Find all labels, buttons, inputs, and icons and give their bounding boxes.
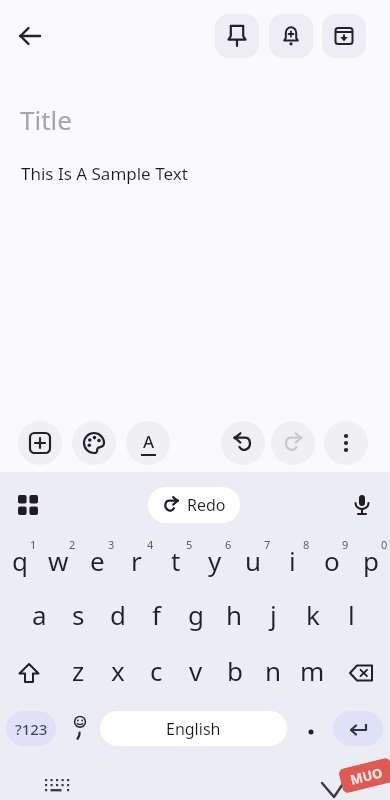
staticText: m bbox=[300, 653, 325, 688]
staticText: 6 bbox=[225, 537, 232, 552]
button[interactable]: z bbox=[58, 647, 98, 693]
button[interactable] bbox=[8, 651, 50, 697]
staticText: u bbox=[245, 543, 262, 578]
button[interactable]: v bbox=[176, 647, 215, 693]
staticText: a bbox=[32, 597, 47, 632]
button[interactable] bbox=[296, 711, 326, 746]
staticText: 8 bbox=[303, 537, 310, 552]
staticText: 3 bbox=[108, 537, 115, 552]
button[interactable] bbox=[221, 421, 265, 465]
staticText: x bbox=[111, 653, 125, 688]
button[interactable] bbox=[271, 421, 315, 465]
staticText: l bbox=[348, 597, 355, 632]
staticText: This Is A Sample Text bbox=[21, 162, 188, 185]
button[interactable]: g bbox=[176, 591, 215, 637]
staticText: ?123 bbox=[15, 719, 48, 739]
button[interactable] bbox=[40, 776, 74, 796]
staticText: 1 bbox=[30, 537, 37, 552]
button[interactable] bbox=[72, 421, 116, 465]
button[interactable]: k bbox=[293, 591, 332, 637]
staticText: 5 bbox=[186, 537, 193, 552]
button[interactable] bbox=[322, 14, 366, 58]
button[interactable] bbox=[8, 14, 52, 58]
button[interactable]: q bbox=[0, 537, 39, 583]
button[interactable]: p bbox=[351, 537, 390, 583]
staticText: v bbox=[189, 653, 203, 688]
button[interactable]: ?123 bbox=[6, 711, 56, 746]
button[interactable] bbox=[215, 14, 259, 58]
staticText: o bbox=[324, 543, 340, 578]
button[interactable] bbox=[348, 491, 376, 519]
button[interactable]: x bbox=[98, 647, 137, 693]
staticText: c bbox=[150, 653, 163, 688]
button[interactable] bbox=[62, 711, 96, 746]
staticText: English bbox=[166, 718, 221, 740]
staticText: q bbox=[12, 543, 28, 578]
staticText: i bbox=[289, 543, 296, 578]
staticText: 7 bbox=[264, 537, 271, 552]
button[interactable] bbox=[18, 421, 62, 465]
button[interactable]: u bbox=[234, 537, 273, 583]
staticText: d bbox=[110, 597, 126, 632]
button[interactable]: m bbox=[293, 647, 332, 693]
button[interactable]: j bbox=[254, 591, 293, 637]
staticText: y bbox=[208, 543, 222, 578]
staticText: e bbox=[90, 543, 105, 578]
staticText: r bbox=[131, 543, 142, 578]
button[interactable]: c bbox=[137, 647, 176, 693]
staticText: Redo bbox=[187, 494, 226, 516]
button[interactable]: n bbox=[254, 647, 293, 693]
staticText: k bbox=[306, 597, 320, 632]
staticText: p bbox=[363, 543, 379, 578]
staticText: n bbox=[265, 653, 282, 688]
button[interactable]: f bbox=[137, 591, 176, 637]
staticText: 0 bbox=[381, 537, 388, 552]
button[interactable]: r bbox=[117, 537, 156, 583]
staticText: w bbox=[48, 543, 69, 578]
staticText: z bbox=[72, 653, 85, 688]
staticText: 2 bbox=[69, 537, 76, 552]
staticText: b bbox=[227, 653, 243, 688]
staticText: 9 bbox=[342, 537, 349, 552]
button[interactable] bbox=[14, 491, 42, 519]
button[interactable]: l bbox=[332, 591, 371, 637]
button[interactable] bbox=[340, 651, 382, 697]
button[interactable]: y bbox=[195, 537, 234, 583]
staticText: h bbox=[226, 597, 243, 632]
button[interactable]: s bbox=[59, 591, 98, 637]
button[interactable]: a bbox=[19, 591, 59, 637]
staticText: g bbox=[188, 597, 204, 632]
button[interactable]: o bbox=[312, 537, 351, 583]
button[interactable] bbox=[269, 14, 313, 58]
button[interactable]: A bbox=[126, 421, 170, 465]
button[interactable]: d bbox=[98, 591, 137, 637]
button[interactable] bbox=[333, 711, 383, 746]
button[interactable]: b bbox=[215, 647, 254, 693]
staticText: t bbox=[171, 543, 181, 578]
button[interactable]: h bbox=[215, 591, 254, 637]
button[interactable] bbox=[324, 421, 368, 465]
button[interactable]: Redo bbox=[148, 487, 240, 523]
staticText: j bbox=[270, 597, 277, 632]
button[interactable]: w bbox=[39, 537, 78, 583]
staticText: MUO bbox=[348, 763, 385, 789]
staticText: 4 bbox=[147, 537, 154, 552]
staticText: Title bbox=[20, 102, 72, 137]
staticText: A bbox=[143, 430, 155, 453]
button[interactable]: English bbox=[100, 711, 287, 746]
staticText: f bbox=[152, 597, 161, 632]
button[interactable]: i bbox=[273, 537, 312, 583]
staticText: s bbox=[72, 597, 85, 632]
button[interactable]: e bbox=[78, 537, 117, 583]
button[interactable]: t bbox=[156, 537, 195, 583]
